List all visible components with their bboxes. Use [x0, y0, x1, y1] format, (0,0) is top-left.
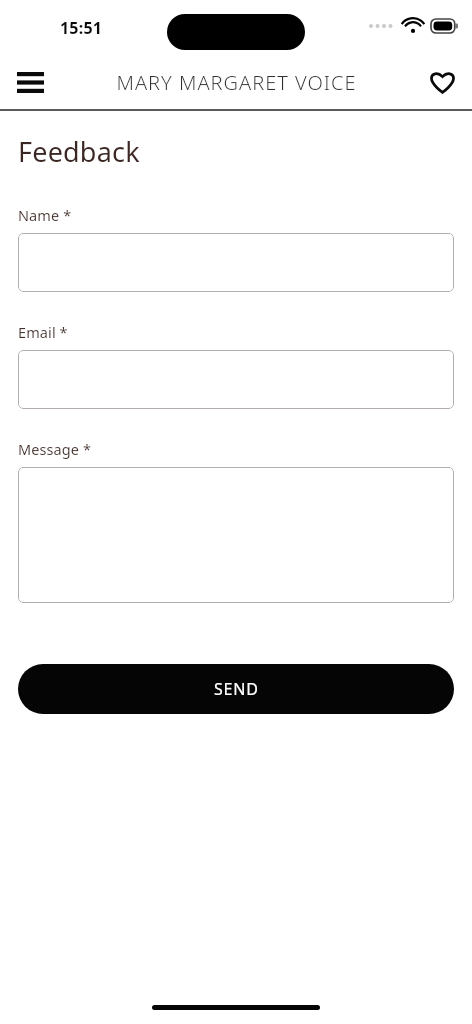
- staticText: Message *: [18, 439, 92, 459]
- staticText: SEND: [214, 678, 259, 700]
- staticText: MARY MARGARET VOICE: [116, 69, 357, 96]
- button[interactable]: [18, 233, 454, 292]
- staticText: Name *: [18, 205, 72, 225]
- staticText: Email *: [18, 322, 68, 342]
- button[interactable]: Open navigation menu: [9, 61, 51, 103]
- staticText: Feedback: [18, 133, 140, 170]
- button[interactable]: [18, 467, 454, 603]
- button[interactable]: Favourites: [421, 61, 463, 103]
- button[interactable]: SEND: [18, 664, 454, 714]
- button[interactable]: [18, 350, 454, 409]
- staticText: 15:51: [60, 17, 103, 39]
